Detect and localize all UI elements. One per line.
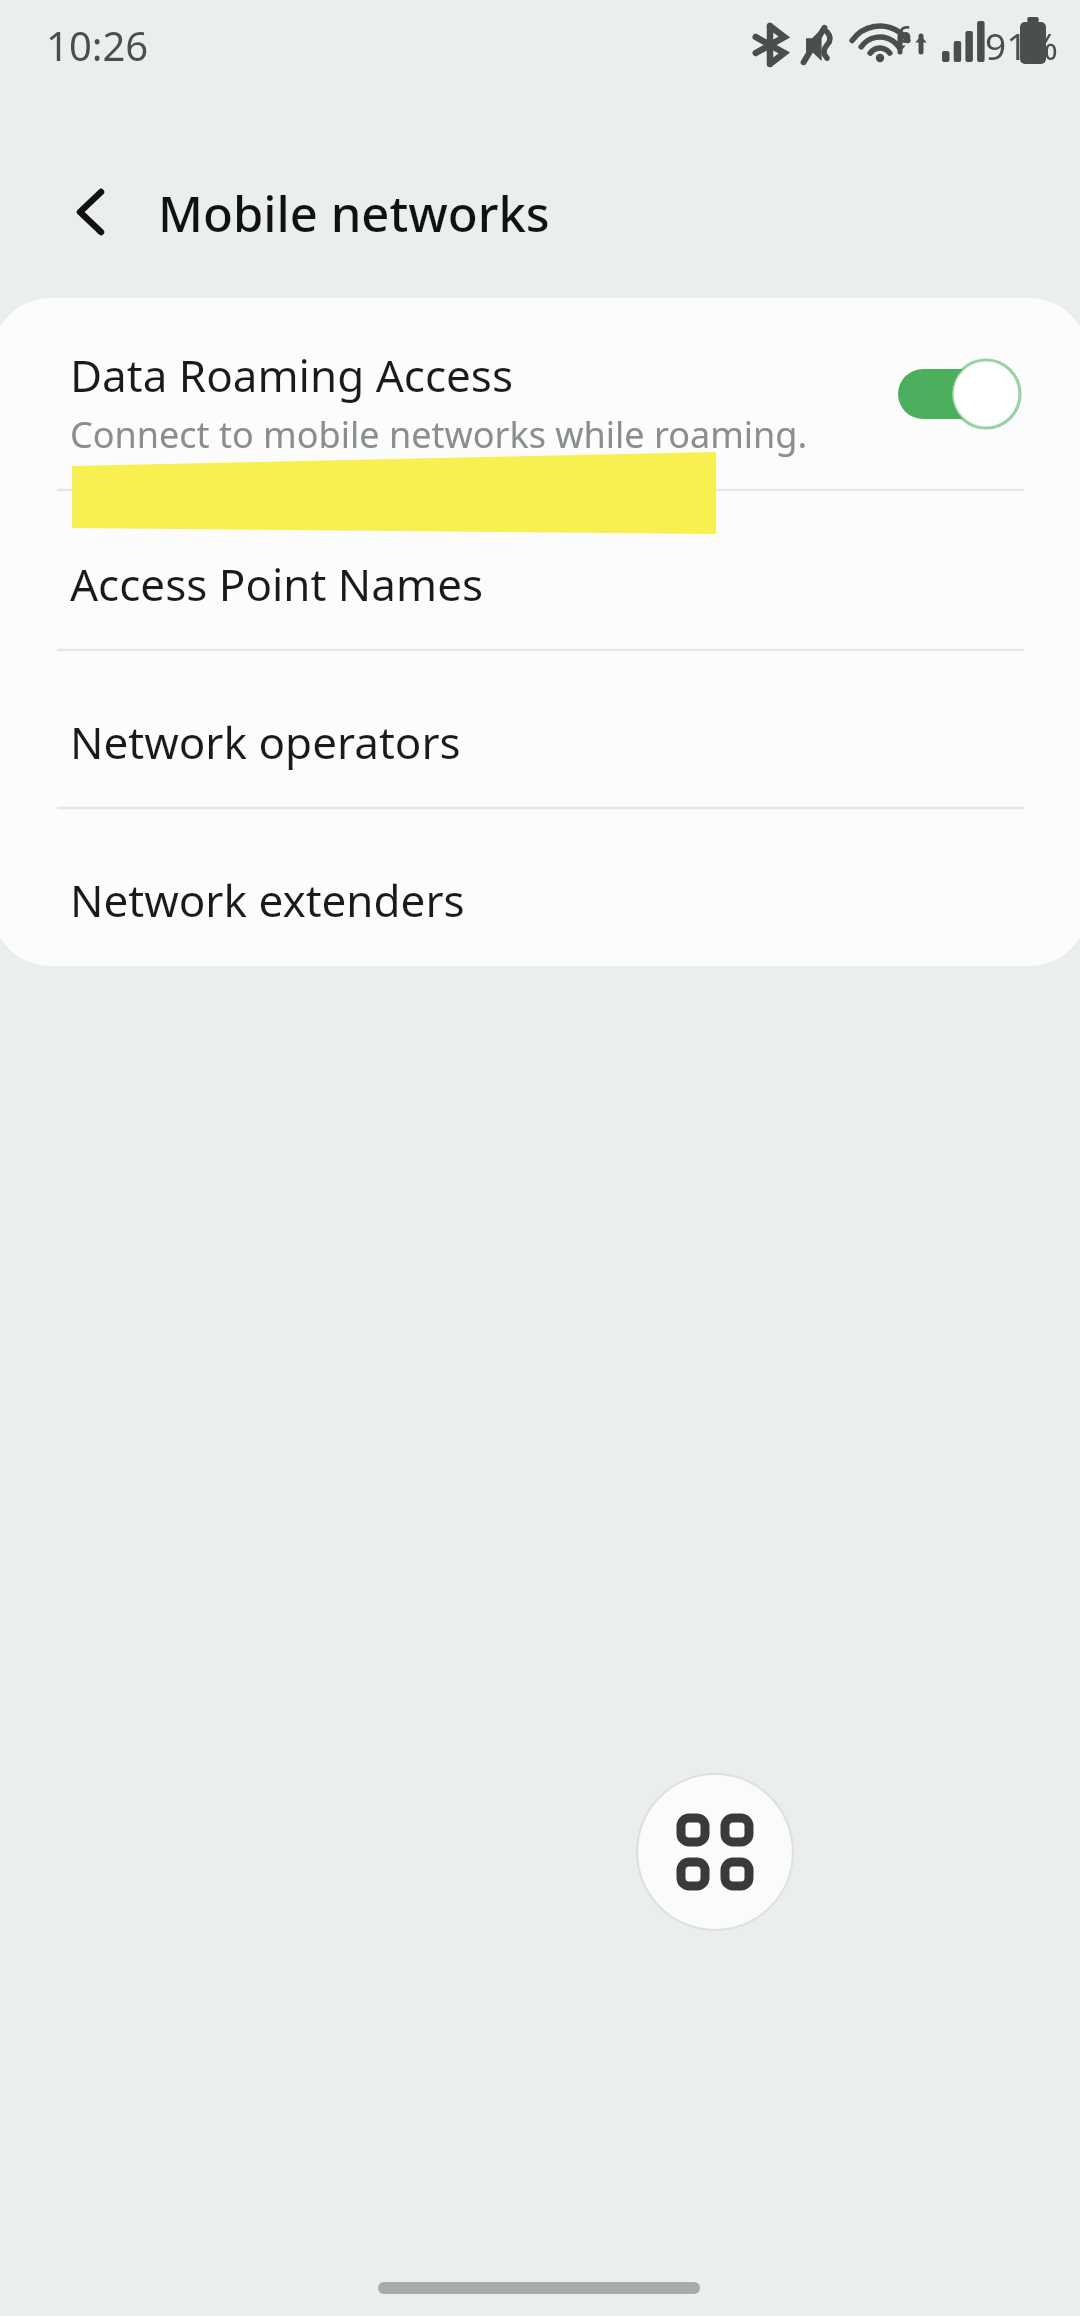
button[interactable] [0,652,1080,808]
button[interactable]: Back [40,160,150,268]
button[interactable] [0,810,1080,966]
button[interactable] [0,500,1080,650]
button[interactable]: Apps grid [637,1774,793,1930]
button[interactable]: Data Roaming Access toggle [880,352,1030,438]
button[interactable] [0,310,1080,490]
